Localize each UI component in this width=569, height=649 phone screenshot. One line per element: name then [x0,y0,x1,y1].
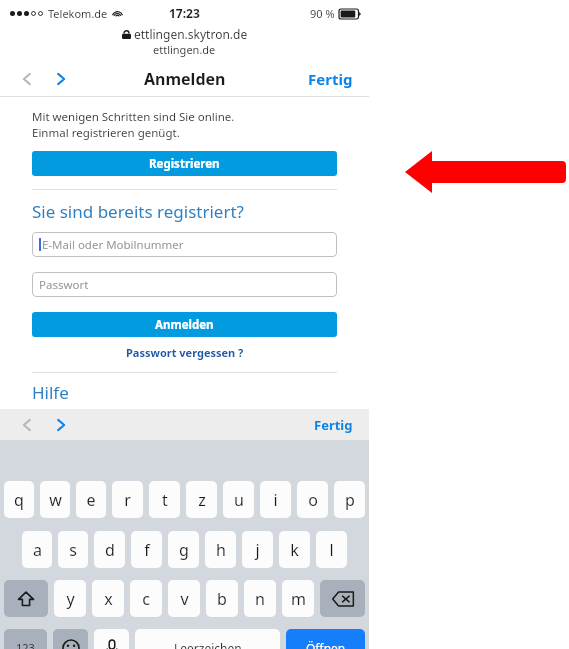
button[interactable]: v [168,580,200,617]
staticText: 90 % [310,6,335,21]
button[interactable]: t [149,481,180,518]
staticText: p [345,489,355,511]
button[interactable]: Registrieren [32,151,337,176]
button[interactable]: y [54,580,86,617]
button[interactable]: u [223,481,254,518]
button[interactable]: E-Mail oder Mobilnummer [32,232,337,257]
button[interactable]: Shift [4,580,48,617]
button[interactable]: Anmelden [32,312,337,337]
staticText: v [180,588,189,610]
staticText: Einmal registrieren genügt. [32,125,180,141]
staticText: l [329,539,334,561]
staticText: u [234,489,244,511]
staticText: Öffnen [306,640,346,649]
button[interactable]: Fertig [308,412,359,438]
staticText: Sie sind bereits registriert? [32,200,244,223]
staticText: 123 [16,640,35,649]
staticText: z [198,489,206,511]
button[interactable]: i [260,481,291,518]
button[interactable]: l [316,531,347,568]
staticText: Anmelden [144,68,226,90]
button[interactable]: f [131,531,162,568]
staticText: h [216,539,226,561]
button[interactable]: w [40,481,70,518]
button[interactable]: Forward [48,66,74,92]
button[interactable]: Back [14,66,40,92]
button[interactable]: Passwort vergessen ? [32,342,337,363]
staticText: o [308,489,318,511]
staticText: Hilfe [32,381,69,404]
button[interactable]: s [58,531,88,568]
staticText: j [255,539,260,561]
staticText: Passwort [39,277,89,293]
button[interactable]: Passwort [32,272,337,297]
button[interactable]: Backspace [320,580,365,617]
staticText: x [104,588,113,610]
staticText: r [124,489,131,511]
button[interactable]: e [76,481,106,518]
button[interactable]: a [22,531,52,568]
button[interactable]: d [94,531,125,568]
staticText: d [105,539,115,561]
button[interactable]: m [282,580,314,617]
staticText: Passwort vergessen ? [126,345,244,360]
staticText: t [162,489,168,511]
staticText: g [179,539,189,561]
button[interactable]: x [92,580,124,617]
button[interactable]: 123 [4,629,47,649]
button[interactable]: Dictate [94,629,129,649]
staticText: k [290,539,299,561]
staticText: w [49,489,62,511]
button[interactable]: Emoji [53,629,88,649]
button[interactable]: Previous field [14,412,40,438]
staticText: Leerzeichen [174,640,242,649]
button[interactable]: Leerzeichen [135,629,280,649]
button[interactable]: c [130,580,162,617]
button[interactable]: Fertig [302,65,359,93]
button[interactable]: q [4,481,34,518]
staticText: 17:23 [169,5,200,21]
staticText: Anmelden [155,317,214,333]
staticText: ettlingen.de [153,42,216,57]
staticText: Fertig [308,69,353,89]
staticText: b [217,588,227,610]
staticText: Fertig [314,416,353,434]
button[interactable]: j [242,531,273,568]
button[interactable]: z [186,481,217,518]
staticText: f [144,539,150,561]
button[interactable]: n [244,580,276,617]
staticText: e [86,489,96,511]
button[interactable]: Next field [48,412,74,438]
staticText: c [142,588,150,610]
button[interactable]: r [112,481,143,518]
staticText: y [66,588,75,610]
staticText: m [291,588,306,610]
button[interactable]: h [205,531,236,568]
staticText: a [33,539,42,561]
staticText: E-Mail oder Mobilnummer [42,237,184,253]
button[interactable]: p [334,481,365,518]
staticText: i [273,489,278,511]
button[interactable]: k [279,531,310,568]
staticText: Registrieren [149,156,220,172]
staticText: ettlingen.skytron.de [134,26,248,42]
button[interactable]: b [206,580,238,617]
button[interactable]: g [168,531,199,568]
staticText: Telekom.de [48,6,108,21]
staticText: n [255,588,265,610]
staticText: Mit wenigen Schritten sind Sie online. [32,109,235,125]
button[interactable]: o [297,481,328,518]
button[interactable]: Öffnen [286,629,365,649]
staticText: q [14,489,24,511]
staticText: s [69,539,77,561]
